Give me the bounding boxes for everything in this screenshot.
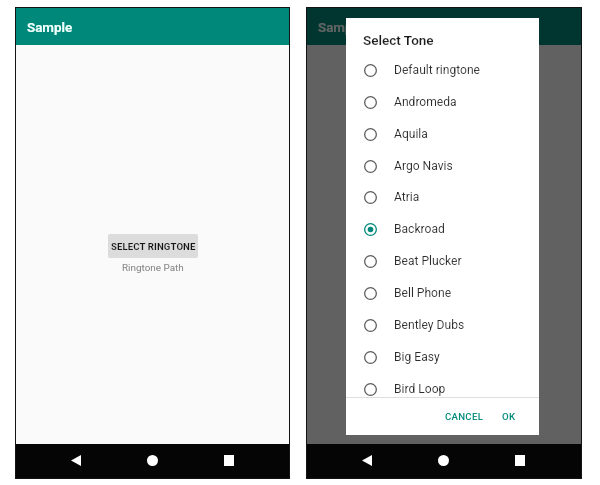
button[interactable]: Recent apps [502, 443, 538, 477]
button[interactable]: Atria [346, 181, 539, 213]
button[interactable]: Beat Plucker [346, 245, 539, 277]
button[interactable]: Recent apps [211, 443, 247, 477]
button[interactable]: Andromeda [346, 86, 539, 118]
staticText: Bird Loop [394, 382, 446, 396]
staticText: Aquila [394, 127, 428, 141]
staticText: Argo Navis [394, 159, 453, 173]
staticText: Backroad [394, 222, 445, 236]
staticText: SELECT RINGTONE [111, 241, 196, 252]
staticText: Atria [394, 190, 420, 204]
staticText: Big Easy [394, 350, 440, 364]
button[interactable]: Default ringtone [346, 54, 539, 86]
button[interactable]: OK [494, 404, 524, 429]
staticText: Sample [27, 20, 73, 36]
button[interactable]: Bentley Dubs [346, 309, 539, 341]
staticText: Default ringtone [394, 63, 481, 77]
button[interactable]: Home [134, 443, 170, 477]
button[interactable]: Bell Phone [346, 277, 539, 309]
staticText: Beat Plucker [394, 254, 462, 268]
staticText: Ringtone Path [122, 262, 184, 274]
staticText: CANCEL [445, 411, 484, 422]
staticText: Bell Phone [394, 286, 452, 300]
staticText: Sample [318, 20, 364, 36]
button[interactable]: Home [425, 443, 461, 477]
staticText: Select Tone [363, 32, 434, 48]
button[interactable]: Back [58, 443, 94, 477]
button[interactable]: Argo Navis [346, 150, 539, 182]
button[interactable]: SELECT RINGTONE [108, 234, 198, 258]
staticText: Andromeda [394, 95, 457, 109]
button[interactable]: CANCEL [437, 404, 492, 429]
staticText: OK [502, 411, 516, 422]
button[interactable]: Backroad [346, 213, 539, 245]
button[interactable]: Aquila [346, 118, 539, 150]
staticText: Bentley Dubs [394, 318, 465, 332]
button[interactable]: Back [349, 443, 385, 477]
button[interactable]: Bird Loop [346, 373, 539, 397]
button[interactable]: Big Easy [346, 341, 539, 373]
